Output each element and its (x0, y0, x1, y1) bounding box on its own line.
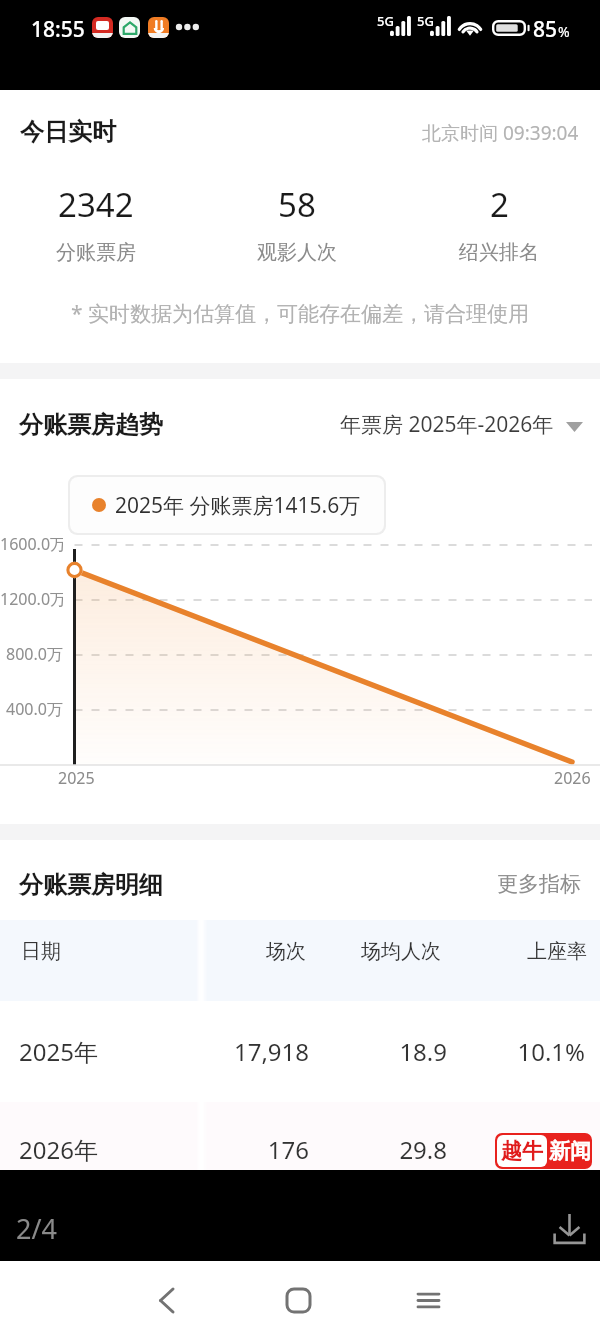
staticText: 5G (377, 12, 394, 30)
staticText: 2025 (58, 767, 95, 789)
staticText: 分账票房 (56, 240, 136, 265)
button[interactable]: Recent apps (398, 1270, 458, 1330)
staticText: 场均人次 (320, 939, 441, 964)
staticText: 绍兴排名 (459, 240, 539, 265)
staticText: 年票房 2025年-2026年 (340, 410, 554, 439)
staticText: 2026 (554, 767, 591, 789)
staticText: 观影人次 (257, 240, 337, 265)
staticText: 1600.0万 (0, 533, 63, 555)
staticText: 17,918 (150, 1035, 309, 1068)
staticText (440, 1133, 585, 1166)
staticText: 2/4 (16, 1210, 57, 1247)
staticText: 北京时间 09:39:04 (422, 120, 579, 146)
staticText: % (558, 22, 570, 41)
staticText: 29.8 (320, 1133, 447, 1166)
staticText: 今日实时 (20, 117, 116, 147)
staticText: 越牛 (501, 1138, 543, 1164)
staticText: 18:55 (31, 15, 85, 44)
staticText: 1200.0万 (0, 588, 63, 610)
button[interactable]: 2025年 (0, 1001, 600, 1102)
staticText: 2025年 分账票房1415.6万 (115, 491, 361, 520)
button[interactable]: Download (540, 1200, 598, 1250)
staticText: 5G (417, 12, 434, 30)
staticText: 176 (150, 1133, 309, 1166)
staticText: * 实时数据为估算值，可能存在偏差，请合理使用 (0, 299, 600, 328)
staticText: 2025年 (19, 1035, 98, 1068)
staticText: 400.0万 (6, 698, 63, 720)
staticText: 2026年 (19, 1133, 98, 1166)
staticText: 800.0万 (6, 643, 63, 665)
staticText: 2 (490, 182, 509, 227)
button[interactable]: Home (268, 1270, 328, 1330)
button[interactable]: 2 (409, 182, 589, 265)
button[interactable]: Back (136, 1270, 196, 1330)
staticText: 分账票房趋势 (19, 410, 163, 440)
staticText: 85 (533, 15, 558, 44)
staticText: 日期 (21, 939, 61, 964)
button[interactable]: 58 (207, 182, 387, 265)
button[interactable]: 2342 (6, 182, 186, 265)
staticText: 上座率 (440, 939, 587, 964)
button[interactable]: 2026年 (0, 1102, 600, 1170)
staticText: 18.9 (320, 1035, 447, 1068)
staticText: 10.1% (440, 1035, 585, 1068)
staticText: 58 (278, 182, 316, 227)
button[interactable]: 年票房 2025年-2026年 (340, 410, 583, 439)
staticText: 分账票房明细 (19, 870, 163, 900)
staticText: 场次 (160, 939, 306, 964)
staticText: 新闻 (549, 1138, 591, 1164)
button[interactable]: 更多指标 (497, 871, 581, 897)
staticText: 2342 (58, 182, 134, 227)
